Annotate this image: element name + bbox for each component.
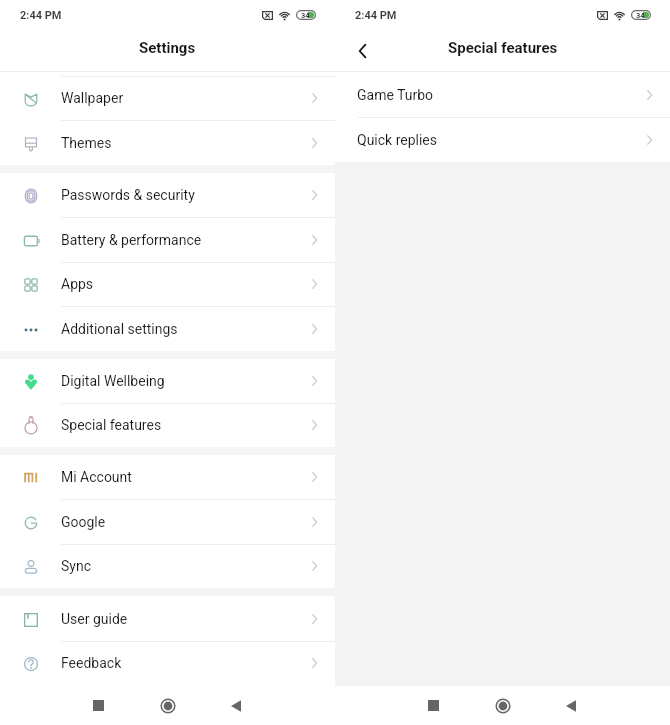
staticText: Google xyxy=(61,514,106,530)
button[interactable]: Themes xyxy=(0,120,335,165)
button[interactable]: Back xyxy=(347,35,379,67)
staticText: Digital Wellbeing xyxy=(61,373,165,389)
button[interactable]: Back xyxy=(551,686,591,725)
staticText: Passwords & security xyxy=(61,187,195,203)
staticText: Apps xyxy=(61,276,94,292)
staticText: Special features xyxy=(61,417,162,433)
button[interactable]: Home xyxy=(148,686,188,725)
staticText: Battery & performance xyxy=(61,232,202,248)
button[interactable]: Battery & performance xyxy=(0,217,335,262)
staticText: Additional settings xyxy=(61,321,178,337)
staticText: Settings xyxy=(139,39,196,57)
button[interactable]: Feedback xyxy=(0,641,335,685)
staticText: 2:44 PM xyxy=(20,9,62,22)
button[interactable]: Sync xyxy=(0,544,335,588)
button[interactable]: Game Turbo xyxy=(335,72,670,117)
staticText: Special features xyxy=(448,39,558,57)
staticText: Sync xyxy=(61,558,91,574)
staticText: Game Turbo xyxy=(357,87,434,103)
staticText: 34 xyxy=(636,11,645,20)
button[interactable]: Mi Account xyxy=(0,455,335,499)
button[interactable]: Wallpaper xyxy=(0,76,335,120)
button[interactable]: Recents xyxy=(78,686,118,725)
button[interactable]: Digital Wellbeing xyxy=(0,359,335,403)
button[interactable]: Quick replies xyxy=(335,117,670,162)
button[interactable]: Apps xyxy=(0,262,335,306)
staticText: Wallpaper xyxy=(61,90,124,106)
button[interactable]: Back xyxy=(216,686,256,725)
staticText: Feedback xyxy=(61,655,122,671)
staticText: User guide xyxy=(61,611,128,627)
button[interactable]: Additional settings xyxy=(0,306,335,351)
staticText: 34 xyxy=(301,11,310,20)
button[interactable]: User guide xyxy=(0,596,335,641)
staticText: Quick replies xyxy=(357,132,438,148)
staticText: Themes xyxy=(61,135,112,151)
button[interactable]: Home xyxy=(483,686,523,725)
staticText: 2:44 PM xyxy=(355,9,397,22)
button[interactable]: Passwords & security xyxy=(0,173,335,217)
button[interactable]: Special features xyxy=(0,403,335,447)
button[interactable]: Google xyxy=(0,499,335,544)
staticText: Mi Account xyxy=(61,469,132,485)
button[interactable]: Recents xyxy=(413,686,453,725)
